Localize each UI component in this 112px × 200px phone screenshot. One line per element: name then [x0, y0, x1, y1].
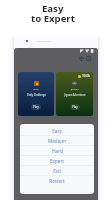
staticText: Medium	[48, 138, 66, 144]
staticText: 10.0k	[82, 74, 91, 78]
staticText: Play	[72, 105, 78, 109]
staticText: Easy	[52, 128, 62, 134]
button[interactable]: Restart	[20, 176, 94, 186]
button[interactable]: Easy	[20, 126, 94, 136]
staticText: Evil	[53, 168, 61, 174]
button[interactable]: Achievements	[79, 56, 84, 61]
button[interactable]: Play	[70, 104, 80, 110]
button[interactable]: Hard	[20, 146, 94, 156]
staticText: Daily Challenge	[27, 93, 46, 97]
staticText: Jigsaw Adventure	[64, 93, 86, 97]
staticText: to Expert	[31, 12, 75, 25]
button[interactable]: Evil	[20, 166, 94, 176]
button[interactable]: Play	[31, 104, 41, 110]
staticText: Expert	[50, 158, 64, 164]
button[interactable]: 10.0k	[56, 72, 93, 116]
staticText: Play	[33, 105, 39, 109]
staticText: Restart	[49, 178, 65, 184]
staticText: JIGSAW	[71, 88, 79, 91]
staticText: DAILY	[33, 88, 40, 91]
button[interactable]: Expert	[20, 156, 94, 166]
staticText: Hard	[52, 148, 63, 154]
button[interactable]: Medium	[20, 136, 94, 146]
button[interactable]: Settings	[86, 56, 91, 61]
staticText: Easy	[42, 2, 64, 15]
button[interactable]: DAILY	[18, 72, 54, 116]
